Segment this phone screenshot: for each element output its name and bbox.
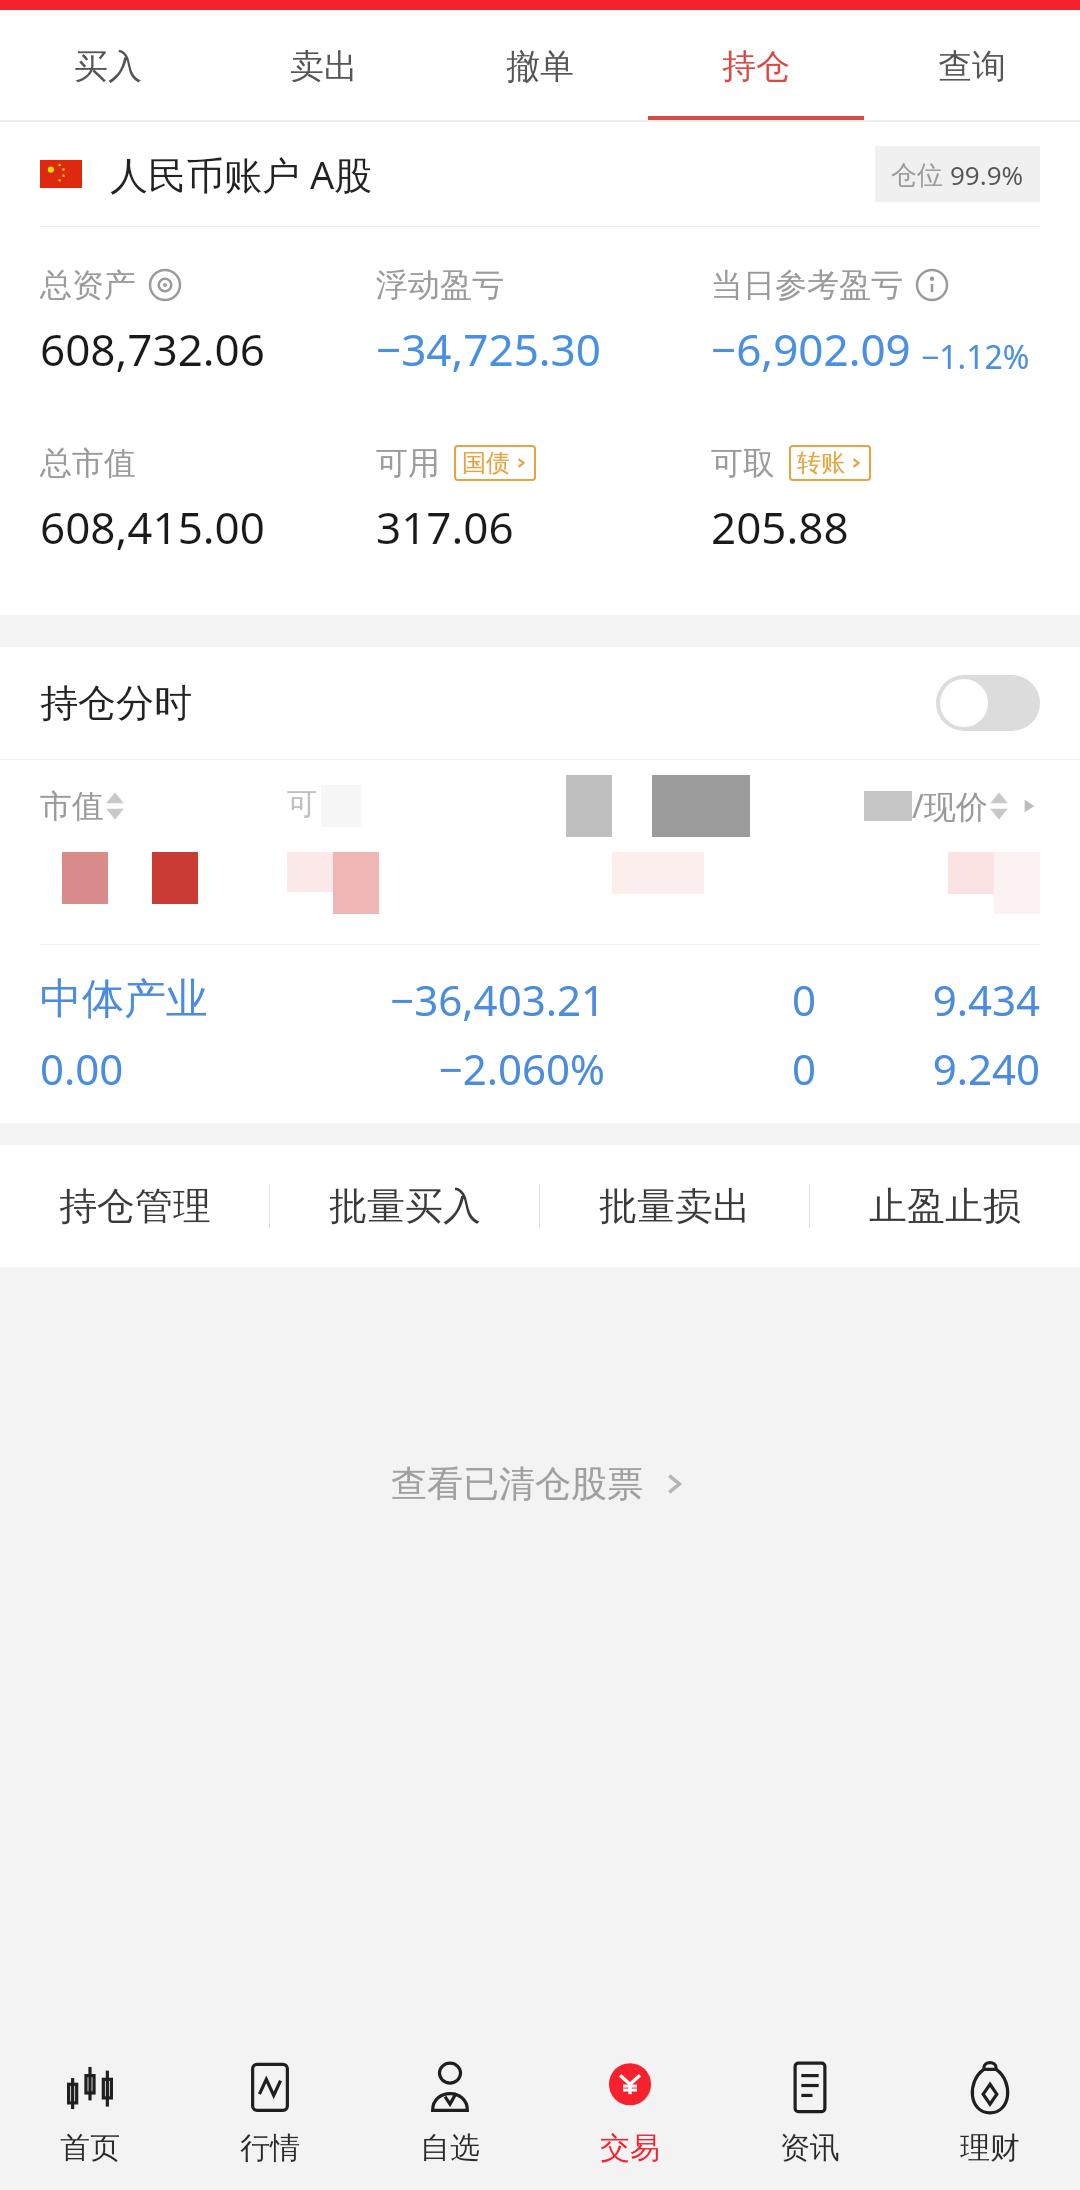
button[interactable]: 持仓管理	[0, 1145, 270, 1267]
button[interactable]: 人民币账户 A股	[40, 122, 1040, 226]
staticText: 持仓管理	[59, 1182, 211, 1230]
staticText: 9.240	[816, 1040, 1040, 1097]
staticText: 资讯	[780, 2129, 840, 2167]
button[interactable]: 中体产业	[0, 945, 1080, 1123]
staticText: 608,732.06	[40, 319, 265, 379]
staticText: 市值	[40, 786, 104, 826]
button[interactable]: 隐藏资产	[148, 268, 182, 302]
staticText: 总市值	[40, 443, 136, 483]
staticText: −1.12%	[921, 335, 1030, 379]
button[interactable]: 查询	[864, 10, 1080, 122]
staticText: 205.88	[711, 497, 849, 557]
button[interactable]: 持仓分时	[40, 647, 1040, 759]
button[interactable]: 行情	[180, 2034, 360, 2190]
staticText: 317.06	[376, 497, 514, 557]
button[interactable]: 卖出	[216, 10, 432, 122]
staticText: 608,415.00	[40, 497, 265, 557]
staticText: 理财	[960, 2129, 1020, 2167]
staticText: 止盈止损	[869, 1182, 1021, 1230]
staticText: 卖出	[290, 45, 358, 88]
staticText: −36,403.21	[302, 971, 605, 1028]
staticText: 9.434	[816, 971, 1040, 1028]
staticText: 撤单	[506, 45, 574, 88]
button[interactable]: 持仓分时开关	[936, 675, 1040, 731]
button[interactable]: 说明	[915, 268, 949, 302]
staticText: /现价	[912, 784, 988, 828]
button[interactable]: 转账	[789, 445, 871, 481]
staticText: 中体产业	[40, 973, 302, 1026]
staticText: 可	[287, 785, 317, 823]
staticText: 0	[605, 971, 816, 1028]
staticText: 0	[605, 1040, 816, 1097]
staticText: 人民币账户 A股	[110, 148, 373, 200]
staticText: 查看已清仓股票	[391, 1461, 643, 1506]
button[interactable]: 持仓	[648, 10, 864, 122]
staticText: 仓位	[891, 156, 950, 192]
button[interactable]: 止盈止损	[810, 1145, 1080, 1267]
staticText: 国债	[462, 448, 510, 478]
button[interactable]: 首页	[0, 2034, 180, 2190]
button[interactable]: 撤单	[432, 10, 648, 122]
staticText: 0.00	[40, 1040, 302, 1097]
staticText: 首页	[60, 2129, 120, 2167]
staticText: 浮动盈亏	[376, 265, 504, 305]
staticText: 查询	[938, 45, 1006, 88]
staticText: 总资产	[40, 265, 136, 305]
staticText: 可用	[376, 443, 440, 483]
button[interactable]: 买入	[0, 10, 216, 122]
staticText: 持仓	[722, 45, 790, 88]
staticText: 买入	[74, 45, 142, 88]
button[interactable]: 批量买入	[270, 1145, 540, 1267]
staticText: 交易	[600, 2129, 660, 2167]
button[interactable]: 国债	[454, 445, 536, 481]
staticText: 批量买入	[329, 1182, 481, 1230]
button[interactable]: 查看已清仓股票	[0, 1435, 1080, 1531]
staticText: 批量卖出	[599, 1182, 751, 1230]
staticText: 可取	[711, 443, 775, 483]
staticText: 转账	[797, 448, 845, 478]
button[interactable]: 理财	[900, 2034, 1080, 2190]
staticText: −6,902.09	[711, 319, 911, 379]
staticText: 99.9%	[950, 157, 1024, 192]
button[interactable]: 资讯	[720, 2034, 900, 2190]
staticText: −34,725.30	[376, 319, 601, 379]
staticText: 当日参考盈亏	[711, 265, 903, 305]
staticText: −2.060%	[302, 1040, 605, 1097]
button[interactable]: 交易	[540, 2034, 720, 2190]
staticText: 行情	[240, 2129, 300, 2167]
staticText: 自选	[420, 2129, 480, 2167]
button[interactable]: 自选	[360, 2034, 540, 2190]
button[interactable]: 批量卖出	[540, 1145, 810, 1267]
staticText: 持仓分时	[40, 679, 192, 727]
